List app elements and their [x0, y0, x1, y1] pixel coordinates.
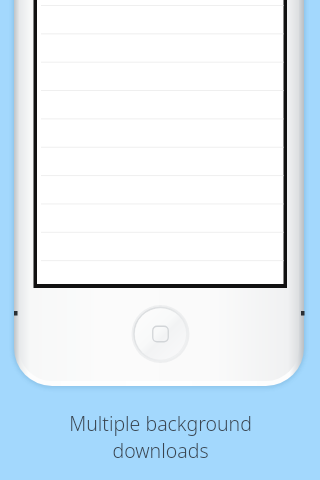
- button[interactable]: Multiple background downloads: [0, 410, 320, 480]
- staticText: Multiple background: [69, 410, 252, 437]
- staticText: downloads: [112, 437, 209, 464]
